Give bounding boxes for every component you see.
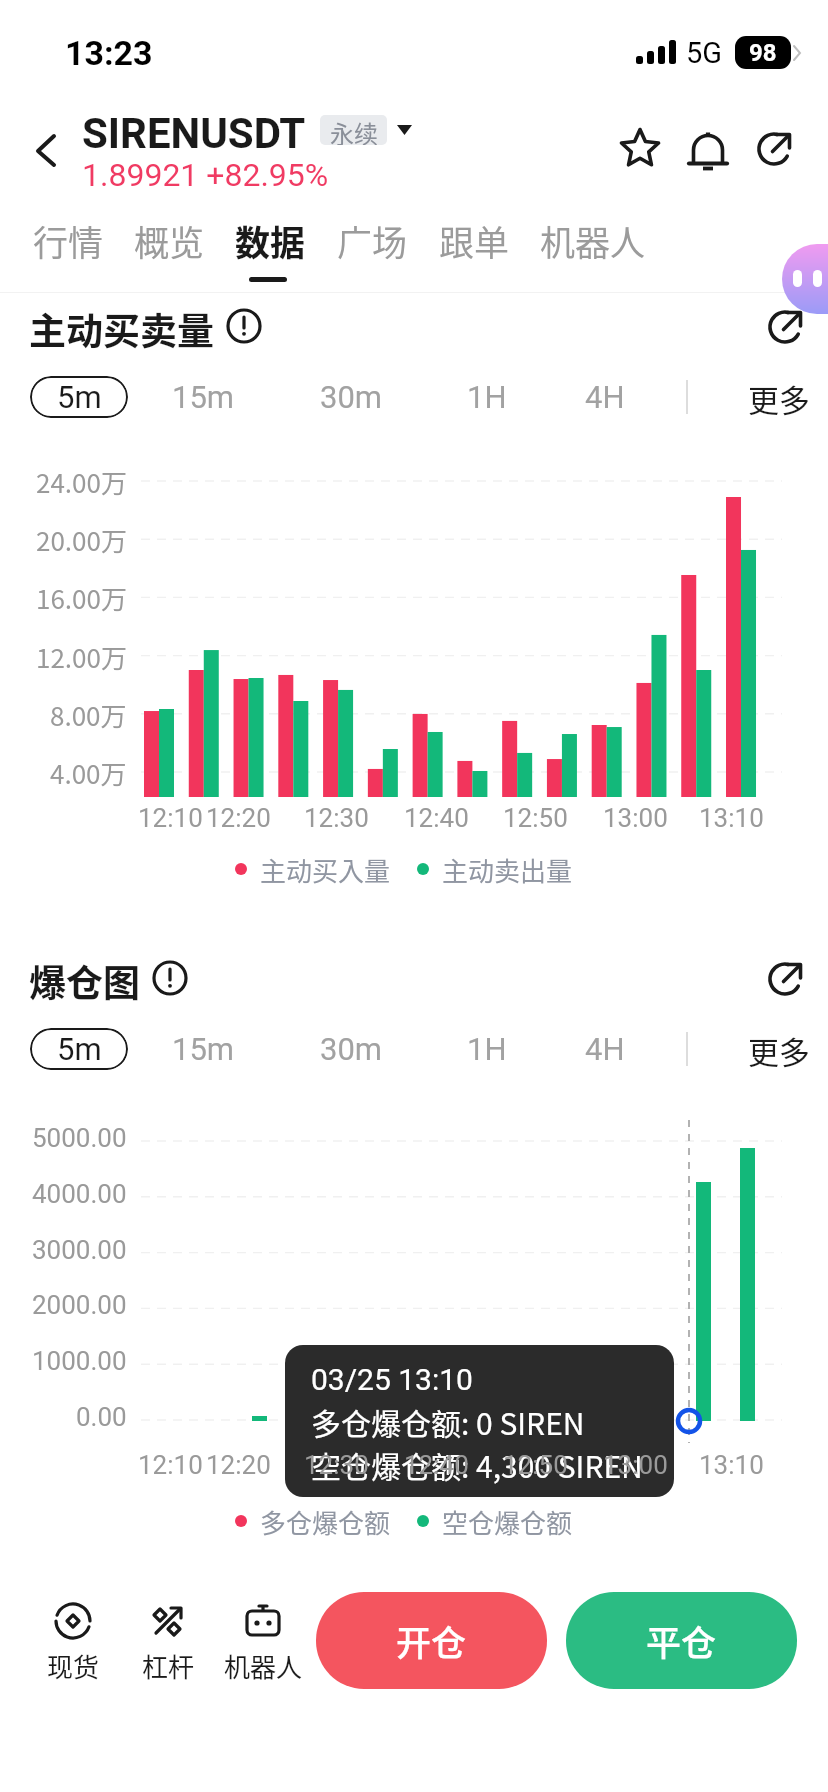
staticText: 12:20 xyxy=(206,1450,271,1480)
staticText: 杠杆 xyxy=(142,1647,195,1685)
staticText: 12:40 xyxy=(404,803,469,833)
staticText: 13:00 xyxy=(603,803,668,833)
staticText: 1000.00 xyxy=(32,1346,127,1376)
staticText: 现货 xyxy=(47,1647,100,1685)
staticText: 12:10 xyxy=(138,803,203,833)
button[interactable]: 30m xyxy=(320,1028,383,1070)
button[interactable]: 4H xyxy=(585,376,625,418)
staticText: 机器人 xyxy=(224,1647,303,1685)
staticText: 24.00万 xyxy=(36,463,127,501)
staticText: 概览 xyxy=(134,215,205,266)
staticText: 12:30 xyxy=(304,803,369,833)
staticText: 12:50 xyxy=(503,803,568,833)
staticText: 主动卖出量 xyxy=(442,851,573,889)
staticText: 2000.00 xyxy=(32,1290,127,1320)
staticText: 12:50 xyxy=(503,1450,568,1480)
staticText: 16.00万 xyxy=(36,579,127,617)
button[interactable]: 机器人 xyxy=(213,1597,313,1685)
staticText: 主动买卖量 xyxy=(29,302,214,356)
staticText: 爆仓图 xyxy=(29,954,140,1008)
button[interactable]: Share xyxy=(746,120,802,176)
button[interactable]: Expand chart xyxy=(757,950,813,1006)
staticText: 开仓 xyxy=(396,1615,467,1666)
button[interactable]: 跟单 xyxy=(439,215,510,271)
staticText: 1.89921 +82.95% xyxy=(82,156,329,194)
button[interactable]: Back xyxy=(18,118,80,180)
button[interactable]: 4H xyxy=(585,1028,625,1070)
staticText: 1H xyxy=(467,1031,507,1067)
staticText: 广场 xyxy=(337,215,408,266)
staticText: 空仓爆仓额 xyxy=(442,1503,573,1541)
button[interactable]: 现货 xyxy=(23,1597,123,1685)
staticText: 跟单 xyxy=(439,215,510,266)
staticText: 20.00万 xyxy=(36,521,127,559)
button[interactable]: 更多 xyxy=(748,1028,810,1070)
button[interactable]: Switch contract xyxy=(393,113,427,147)
staticText: 15m xyxy=(172,1031,235,1067)
button[interactable]: 更多 xyxy=(748,376,810,418)
button[interactable]: 5m xyxy=(30,1028,128,1070)
button[interactable]: 1H xyxy=(467,376,507,418)
staticText: 13:23 xyxy=(65,33,153,73)
staticText: 4.00万 xyxy=(50,754,127,792)
staticText: 13:10 xyxy=(699,1450,764,1480)
button[interactable]: Expand chart xyxy=(757,298,813,354)
button[interactable]: 15m xyxy=(172,1028,235,1070)
button[interactable]: 杠杆 xyxy=(118,1597,218,1685)
button[interactable]: 平仓 xyxy=(566,1592,797,1689)
staticText: 4H xyxy=(585,379,625,415)
staticText: 5000.00 xyxy=(32,1123,127,1153)
staticText: 5G xyxy=(686,36,723,70)
button[interactable]: 30m xyxy=(320,376,383,418)
button[interactable]: 广场 xyxy=(337,215,408,271)
button[interactable]: 机器人 xyxy=(540,215,646,271)
staticText: 主动买入量 xyxy=(260,851,391,889)
staticText: 平仓 xyxy=(646,1615,717,1666)
staticText: 0.00 xyxy=(76,1402,127,1432)
staticText: 行情 xyxy=(33,215,104,266)
staticText: 15m xyxy=(172,379,235,415)
staticText: 13:10 xyxy=(699,803,764,833)
button[interactable]: AI assistant xyxy=(782,244,828,314)
staticText: 12:10 xyxy=(138,1450,203,1480)
staticText: 更多 xyxy=(748,1028,810,1070)
staticText: 12:40 xyxy=(404,1450,469,1480)
staticText: 30m xyxy=(320,1031,383,1067)
button[interactable]: 数据 xyxy=(235,215,306,271)
staticText: 30m xyxy=(320,379,383,415)
staticText: 数据 xyxy=(235,215,306,266)
staticText: 8.00万 xyxy=(50,696,127,734)
button[interactable]: 5m xyxy=(30,376,128,418)
staticText: 空仓爆仓额: 4,300 SIREN xyxy=(311,1443,643,1486)
staticText: 03/25 13:10 xyxy=(311,1362,473,1397)
staticText: 多仓爆仓额 xyxy=(260,1503,391,1541)
staticText: 5m xyxy=(57,1031,102,1067)
staticText: 12:30 xyxy=(304,1450,369,1480)
staticText: SIRENUSDT xyxy=(82,109,306,158)
staticText: 多仓爆仓额: 0 SIREN xyxy=(311,1400,585,1443)
staticText: 1H xyxy=(467,379,507,415)
staticText: 永续 xyxy=(330,115,378,145)
staticText: 3000.00 xyxy=(32,1235,127,1265)
button[interactable]: Info xyxy=(151,959,189,997)
button[interactable]: 15m xyxy=(172,376,235,418)
button[interactable]: Favorite xyxy=(612,120,668,176)
staticText: 更多 xyxy=(748,376,810,418)
button[interactable]: Alerts xyxy=(680,120,736,176)
staticText: 机器人 xyxy=(540,215,646,266)
button[interactable]: Info xyxy=(225,307,263,345)
button[interactable]: 开仓 xyxy=(316,1592,547,1689)
staticText: 13:00 xyxy=(603,1450,668,1480)
button[interactable]: 概览 xyxy=(134,215,205,271)
button[interactable]: 1H xyxy=(467,1028,507,1070)
staticText: 4H xyxy=(585,1031,625,1067)
staticText: 12.00万 xyxy=(36,638,127,676)
staticText: 4000.00 xyxy=(32,1179,127,1209)
button[interactable]: 行情 xyxy=(33,215,104,271)
staticText: 98 xyxy=(749,39,777,67)
button[interactable]: 永续 xyxy=(320,115,387,145)
staticText: 5m xyxy=(57,379,102,415)
staticText: 12:20 xyxy=(206,803,271,833)
